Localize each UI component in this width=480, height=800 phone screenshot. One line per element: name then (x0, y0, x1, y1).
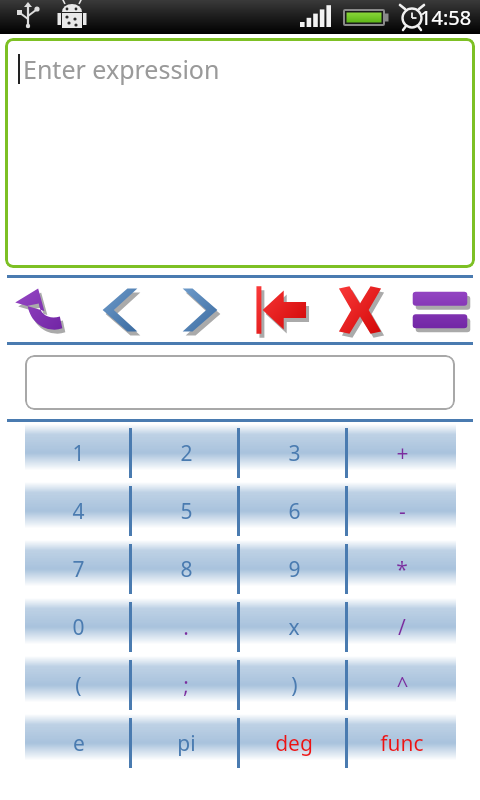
staticText: deg (275, 729, 313, 758)
staticText: 14:58 (420, 4, 472, 31)
button[interactable]: Next (160, 278, 240, 342)
button[interactable]: 2 (132, 424, 240, 482)
staticText: 1 (72, 439, 85, 468)
button[interactable]: 7 (25, 540, 132, 598)
staticText: 6 (288, 497, 301, 526)
staticText: * (396, 555, 408, 584)
button[interactable]: + (348, 424, 456, 482)
button[interactable]: Equals (400, 278, 480, 342)
staticText: 8 (180, 555, 193, 584)
button[interactable]: 4 (25, 482, 132, 540)
button[interactable]: deg (240, 714, 348, 772)
staticText: Enter expression (23, 52, 220, 86)
button[interactable]: Previous (80, 278, 160, 342)
staticText: 9 (288, 555, 301, 584)
staticText: 4 (72, 497, 85, 526)
button[interactable]: e (25, 714, 132, 772)
staticText: x (288, 613, 300, 642)
button[interactable]: . (132, 598, 240, 656)
button[interactable]: Go to start (240, 278, 320, 342)
button[interactable]: 9 (240, 540, 348, 598)
button[interactable]: ^ (348, 656, 456, 714)
button[interactable]: Clear (320, 278, 400, 342)
button[interactable]: 3 (240, 424, 348, 482)
button[interactable]: pi (132, 714, 240, 772)
button[interactable]: 5 (132, 482, 240, 540)
button[interactable]: ) (240, 656, 348, 714)
staticText: ; (183, 671, 189, 700)
button[interactable] (25, 355, 455, 410)
staticText: / (398, 613, 406, 642)
button[interactable]: 0 (25, 598, 132, 656)
button[interactable]: func (348, 714, 456, 772)
staticText: e (73, 729, 85, 758)
staticText: 3 (288, 439, 301, 468)
staticText: 7 (72, 555, 85, 584)
button[interactable]: x (240, 598, 348, 656)
staticText: 0 (72, 613, 85, 642)
staticText: 2 (180, 439, 193, 468)
staticText: + (396, 439, 409, 468)
button[interactable]: - (348, 482, 456, 540)
staticText: pi (177, 729, 196, 758)
button[interactable]: Enter expression (5, 38, 475, 268)
button[interactable]: 6 (240, 482, 348, 540)
button[interactable]: / (348, 598, 456, 656)
staticText: ^ (396, 671, 409, 700)
staticText: . (183, 613, 189, 642)
button[interactable]: ; (132, 656, 240, 714)
button[interactable]: Undo (0, 278, 80, 342)
button[interactable]: ( (25, 656, 132, 714)
staticText: func (380, 729, 424, 758)
staticText: ) (291, 671, 298, 700)
button[interactable]: 1 (25, 424, 132, 482)
staticText: - (399, 497, 406, 526)
button[interactable]: 8 (132, 540, 240, 598)
button[interactable]: * (348, 540, 456, 598)
staticText: ( (75, 671, 82, 700)
staticText: 5 (180, 497, 193, 526)
